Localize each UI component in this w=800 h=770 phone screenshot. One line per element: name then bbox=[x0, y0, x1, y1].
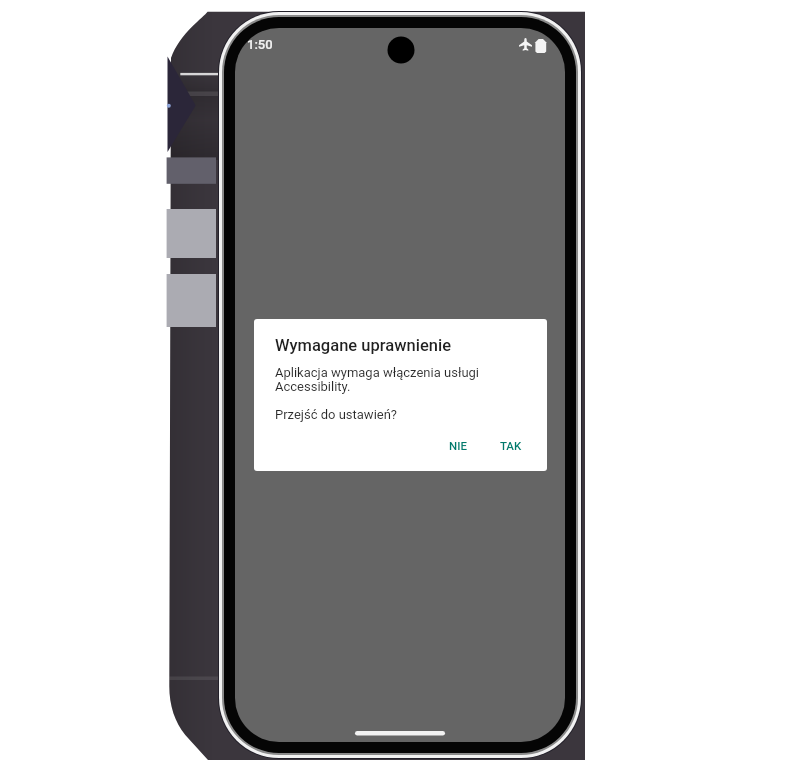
button[interactable]: NIE bbox=[440, 434, 476, 457]
button[interactable]: TAK bbox=[491, 434, 531, 457]
staticText: 1:50 bbox=[247, 37, 273, 52]
staticText: NIE bbox=[449, 439, 467, 452]
staticText: TAK bbox=[500, 439, 522, 452]
staticText: Aplikacja wymaga włączenia usługi Access… bbox=[275, 365, 480, 422]
other: Airplane mode and battery status bbox=[519, 38, 549, 54]
staticText: Wymagane uprawnienie bbox=[275, 336, 452, 355]
